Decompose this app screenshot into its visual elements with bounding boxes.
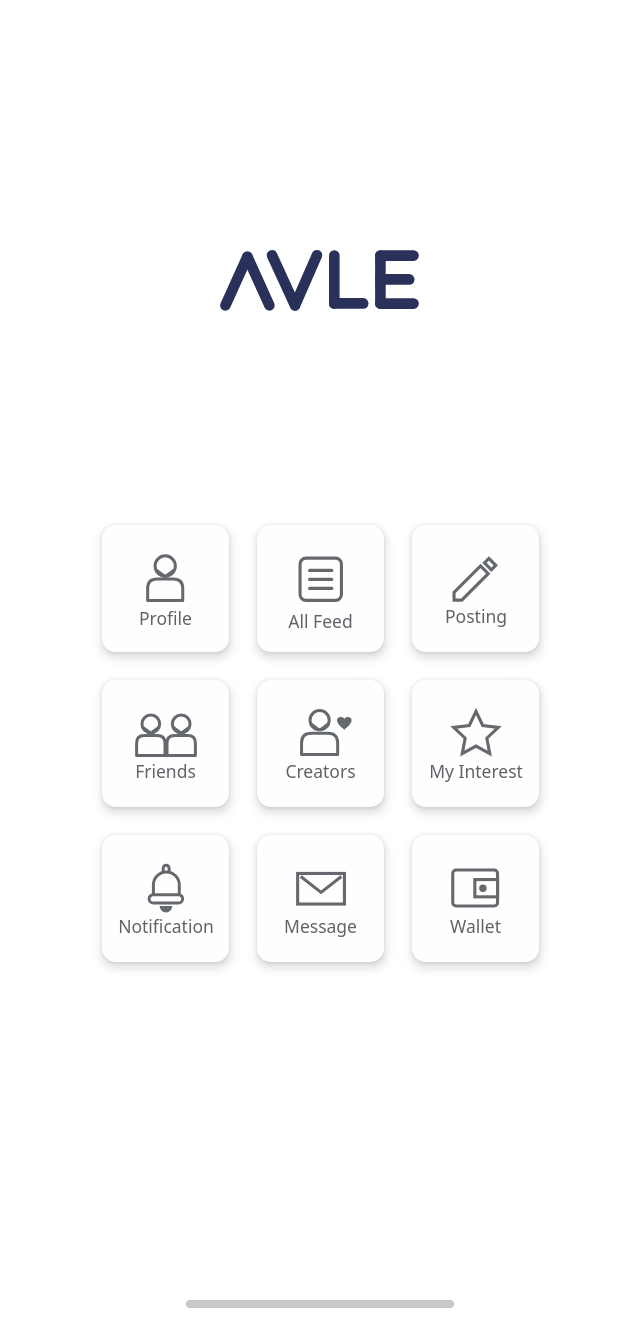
staticText: Wallet	[450, 914, 501, 938]
button[interactable]: Creators	[257, 680, 384, 807]
button[interactable]: All Feed	[257, 525, 384, 652]
staticText: Profile	[139, 606, 192, 630]
staticText: Creators	[285, 759, 356, 783]
staticText: Message	[284, 914, 357, 938]
staticText: Friends	[135, 759, 196, 783]
button[interactable]: Friends	[102, 680, 229, 807]
staticText: Notification	[118, 914, 214, 938]
staticText: Posting	[445, 604, 507, 628]
staticText: All Feed	[288, 609, 353, 633]
button[interactable]: My Interest	[412, 680, 539, 807]
button[interactable]: Notification	[102, 835, 229, 962]
button[interactable]: Posting	[412, 525, 539, 652]
button[interactable]: Message	[257, 835, 384, 962]
staticText: My Interest	[429, 759, 523, 783]
other: AVLE	[219, 250, 420, 311]
button[interactable]: Profile	[102, 525, 229, 652]
button[interactable]: Wallet	[412, 835, 539, 962]
